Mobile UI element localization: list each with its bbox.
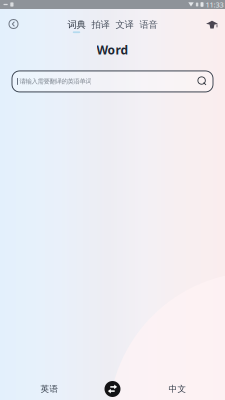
- button[interactable]: 请输入需要翻译的英语单词: [12, 71, 213, 92]
- staticText: 请输入需要翻译的英语单词: [19, 77, 91, 85]
- button[interactable]: Back: [0, 16, 28, 36]
- staticText: 拍译: [91, 19, 109, 30]
- button[interactable]: 文译: [114, 19, 134, 33]
- staticText: 11:33: [205, 0, 223, 10]
- button[interactable]: 词典: [66, 19, 86, 33]
- button[interactable]: 英语: [0, 378, 96, 400]
- staticText: 中文: [168, 384, 186, 394]
- button[interactable]: Study: [196, 16, 225, 36]
- button[interactable]: 中文: [128, 378, 225, 400]
- button[interactable]: Swap languages: [104, 381, 120, 397]
- button[interactable]: 拍译: [90, 19, 110, 33]
- staticText: 英语: [40, 384, 58, 394]
- button[interactable]: 语音: [138, 19, 158, 33]
- staticText: 词典: [67, 19, 85, 30]
- staticText: 语音: [139, 19, 157, 30]
- staticText: Word: [96, 42, 128, 58]
- staticText: 文译: [115, 19, 133, 30]
